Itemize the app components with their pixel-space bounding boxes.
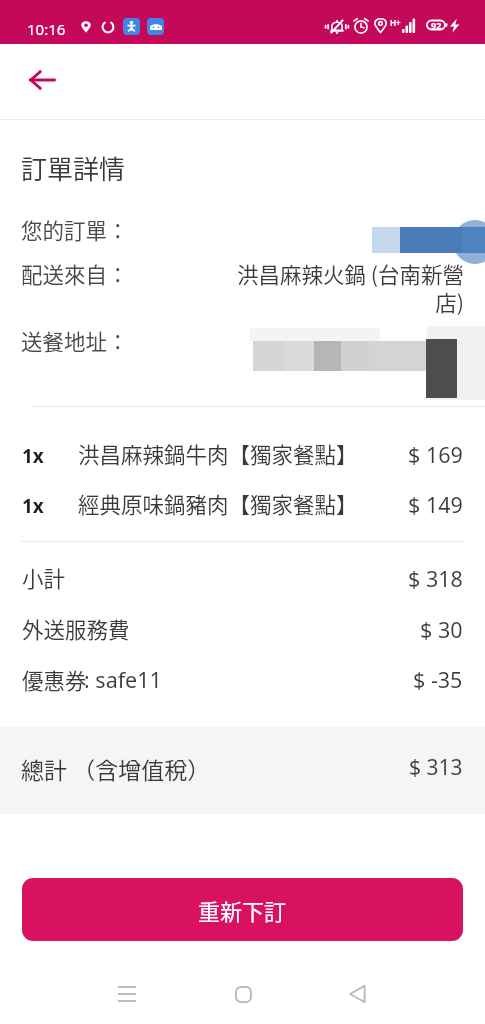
staticText: $ 169: [408, 440, 463, 469]
staticText: 洪昌麻辣鍋牛肉【獨家餐點】: [78, 438, 358, 469]
staticText: H+: [390, 17, 401, 28]
staticText: $ 313: [409, 753, 463, 782]
staticText: 優惠券: [22, 664, 87, 695]
staticText: $ 149: [408, 490, 463, 519]
staticText: 洪昌麻辣火鍋 (台南新營店): [232, 258, 464, 318]
staticText: 配送來自：: [21, 258, 129, 289]
button[interactable]: Home: [219, 970, 267, 1018]
button[interactable]: 重新下訂: [22, 878, 463, 941]
staticText: 送餐地址：: [21, 325, 129, 356]
staticText: 總計 （含增值稅）: [21, 752, 211, 785]
staticText: 92: [431, 19, 442, 31]
staticText: 外送服務費: [22, 613, 130, 644]
staticText: $ -35: [413, 665, 463, 694]
staticText: $ 30: [420, 615, 463, 644]
button[interactable]: Recent apps: [103, 970, 151, 1018]
staticText: 訂單詳情: [21, 149, 126, 187]
staticText: 10:16: [27, 19, 66, 39]
button[interactable]: Back: [333, 970, 381, 1018]
staticText: 1x: [22, 443, 44, 469]
staticText: 小計: [22, 562, 66, 593]
staticText: 您的訂單：: [21, 214, 129, 245]
staticText: : safe11: [84, 665, 162, 694]
staticText: 重新下訂: [198, 894, 287, 926]
button[interactable]: Back: [18, 56, 66, 104]
staticText: 經典原味鍋豬肉【獨家餐點】: [78, 488, 358, 519]
staticText: $ 318: [408, 564, 463, 593]
staticText: 1x: [22, 493, 44, 519]
